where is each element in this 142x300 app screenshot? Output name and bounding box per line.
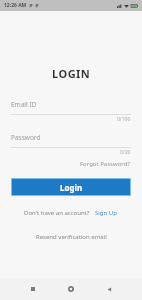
staticText: Login <box>60 182 83 193</box>
button[interactable]: Recent apps <box>26 282 40 296</box>
button[interactable]: Home <box>64 282 78 296</box>
staticText: 0/100 <box>117 116 131 123</box>
button[interactable]: Email ID <box>0 100 142 123</box>
staticText: Resend verification email <box>36 233 107 241</box>
staticText: Sign Up <box>95 209 117 217</box>
staticText: LOGIN <box>52 66 91 81</box>
button[interactable]: Login <box>12 179 130 195</box>
button[interactable]: Back <box>102 282 116 296</box>
button[interactable]: Sign Up <box>94 207 118 219</box>
staticText: 0/20 <box>120 149 131 156</box>
staticText: 12:26 AM <box>4 2 27 9</box>
staticText: Password <box>11 133 41 142</box>
button[interactable]: Forgot Password? <box>78 158 132 170</box>
button[interactable]: Resend verification email <box>32 231 111 243</box>
button[interactable]: Password <box>0 133 142 156</box>
staticText: Don't have an account? <box>24 209 90 217</box>
staticText: Forgot Password? <box>80 160 130 168</box>
staticText: Email ID <box>11 100 37 109</box>
